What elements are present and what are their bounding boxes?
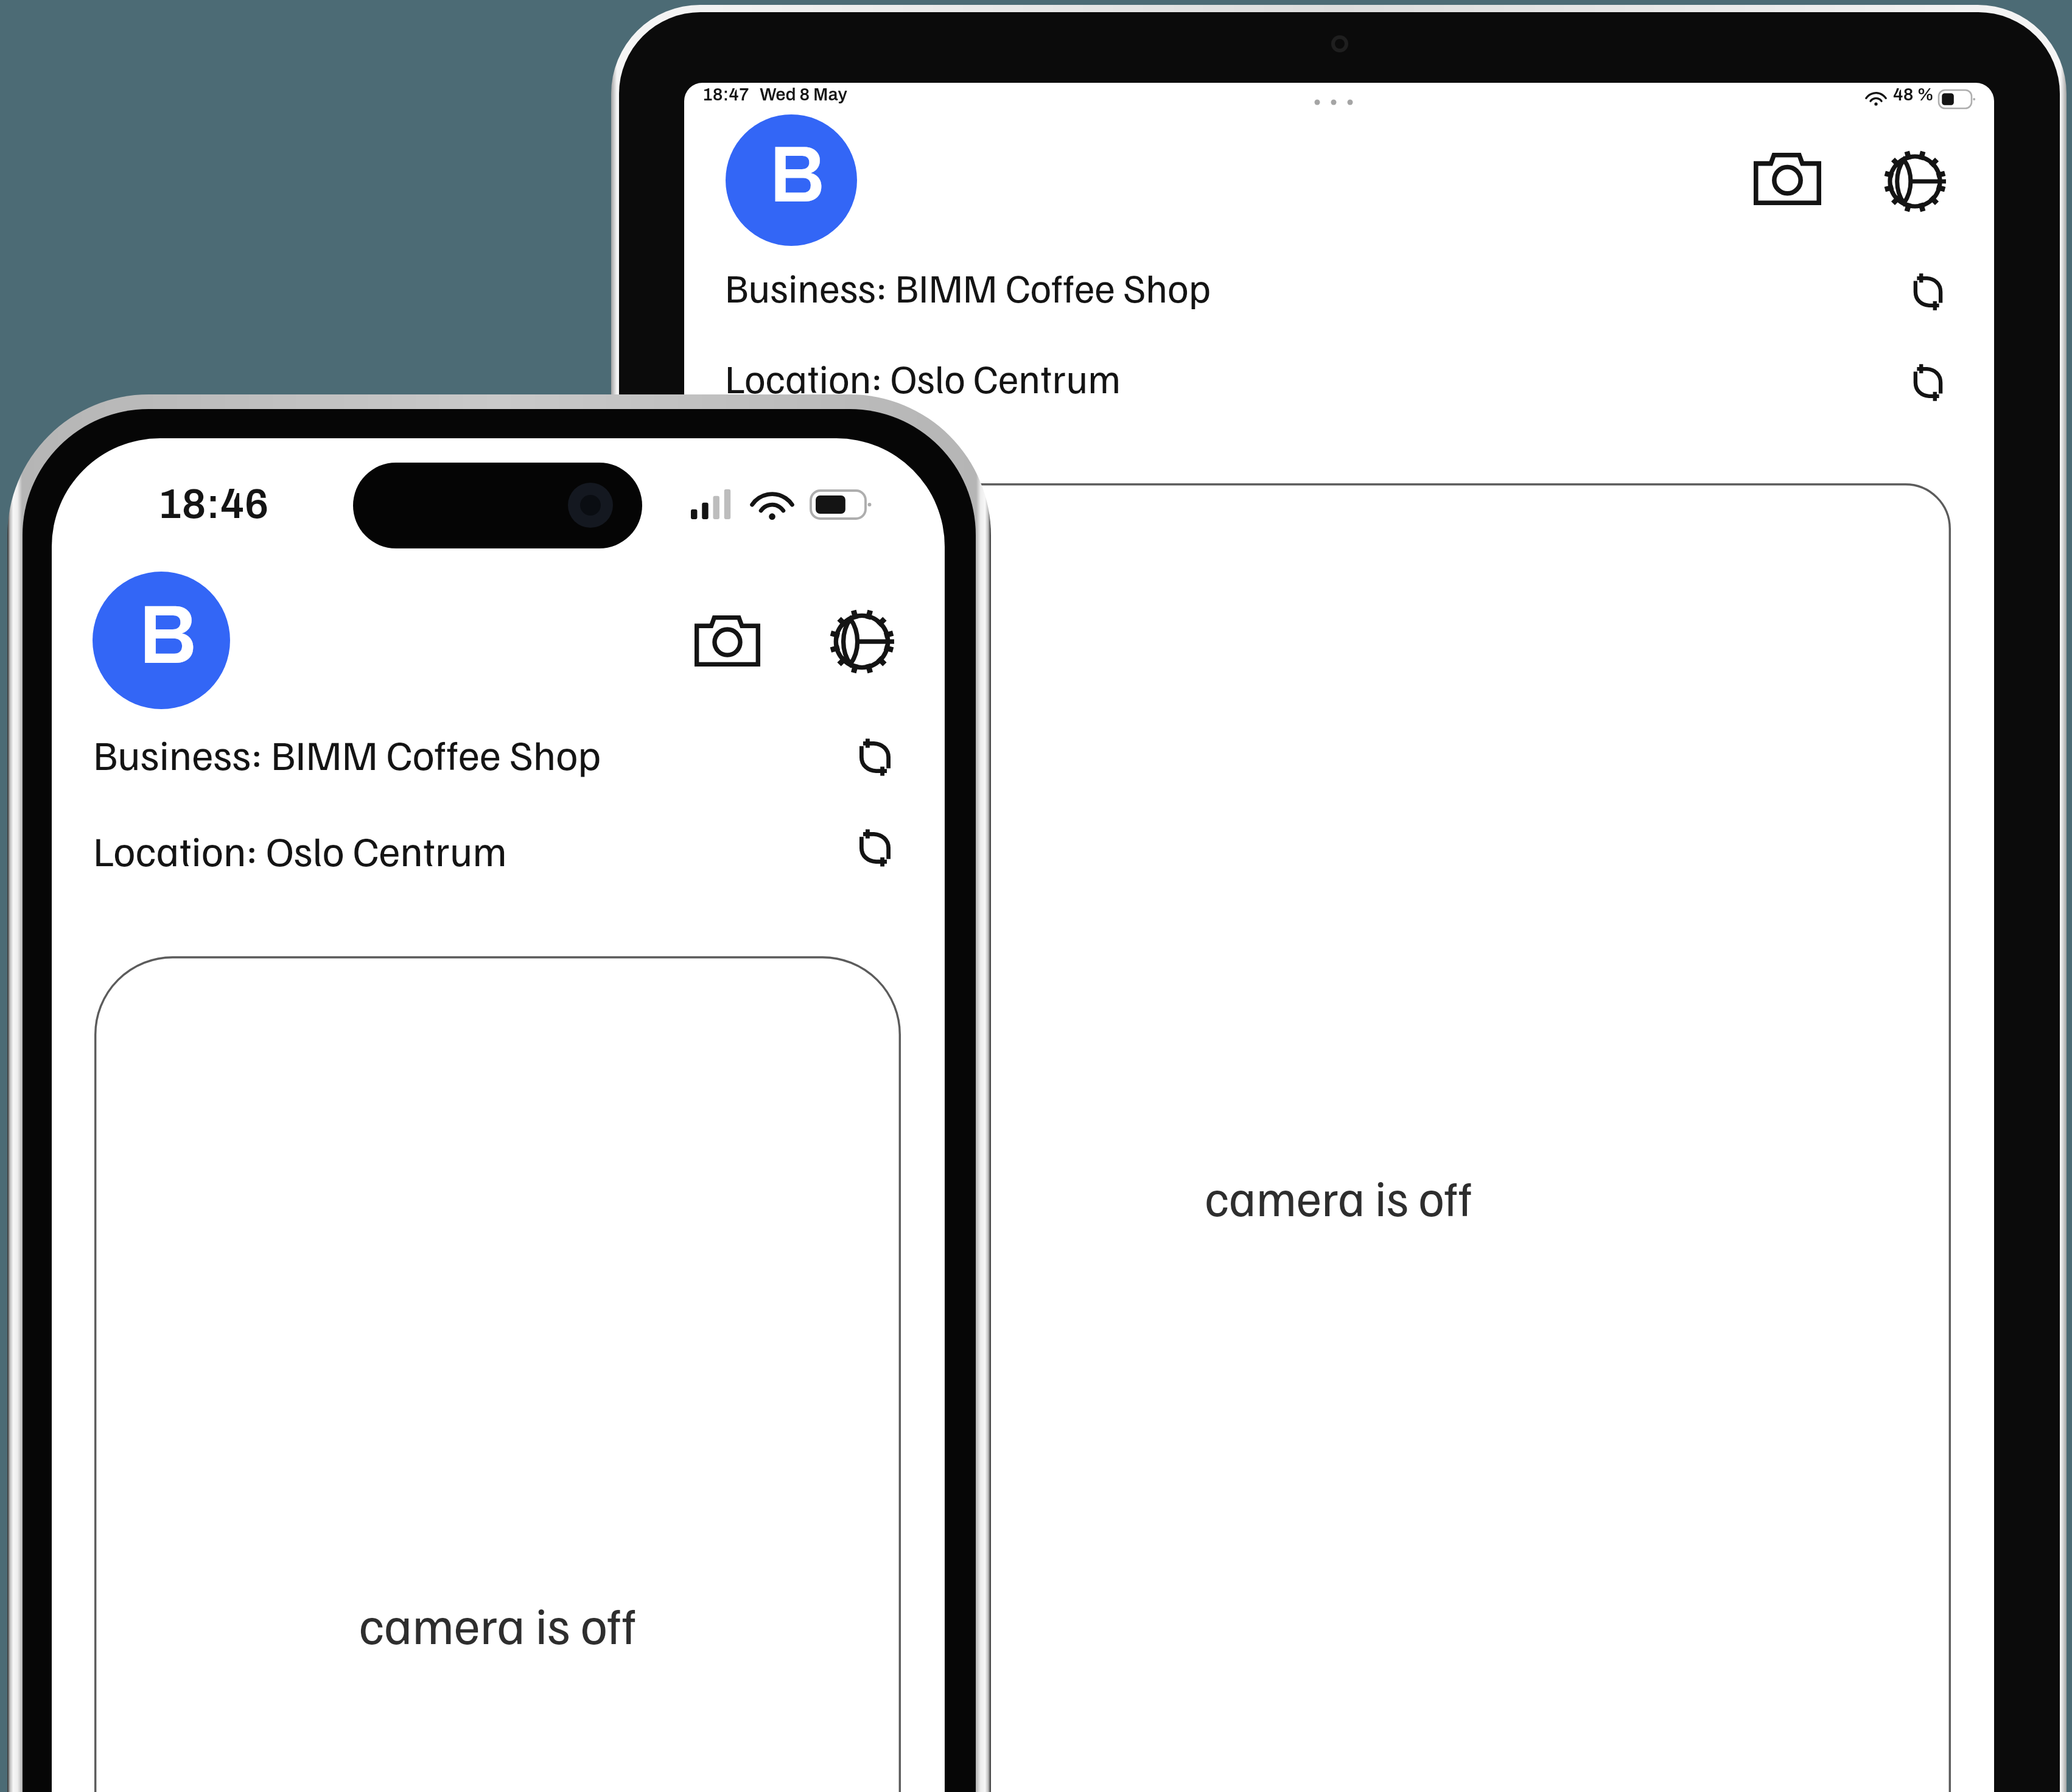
button[interactable]: Refresh business (857, 735, 893, 779)
staticText: B (769, 133, 825, 218)
button[interactable]: Settings (829, 609, 895, 674)
staticText: camera is off (726, 1166, 1951, 1227)
button[interactable]: Refresh location (1911, 361, 1945, 404)
staticText: Business: BIMM Coffee Shop (93, 727, 601, 779)
button[interactable]: Camera preview (94, 956, 901, 1792)
button[interactable]: Settings (1883, 150, 1947, 213)
staticText: Wed 8 May (760, 85, 847, 105)
staticText: Location: Oslo Centrum (93, 823, 507, 875)
staticText: 48 % (1893, 85, 1934, 105)
staticText: Business: BIMM Coffee Shop (725, 261, 1211, 312)
staticText: 18:46 (158, 481, 269, 527)
button[interactable]: Profile (93, 572, 230, 709)
button[interactable]: Camera (695, 615, 760, 667)
button[interactable]: Profile (726, 114, 857, 246)
staticText: Location: Oslo Centrum (725, 352, 1121, 402)
staticText: 18:47 (702, 85, 749, 105)
staticText: camera is off (94, 1592, 901, 1656)
button[interactable]: Refresh location (857, 826, 893, 870)
staticText: B (139, 590, 197, 680)
button[interactable]: Refresh business (1911, 270, 1945, 313)
button[interactable]: Camera (1754, 153, 1821, 205)
button[interactable]: Camera preview (726, 483, 1951, 1792)
